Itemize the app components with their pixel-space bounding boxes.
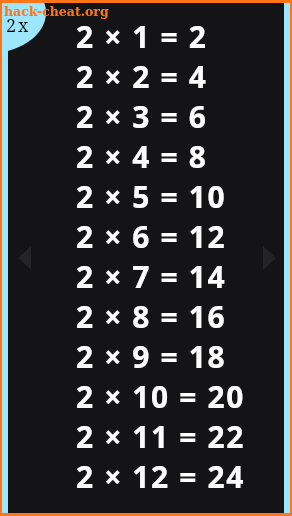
button[interactable]: 2 × 10 = 20 xyxy=(8,376,284,416)
staticText: 2 xyxy=(6,13,17,38)
button[interactable]: Previous table xyxy=(18,246,31,270)
button[interactable]: 2 × 7 = 14 xyxy=(8,256,284,296)
button[interactable]: 2 × 8 = 16 xyxy=(8,296,284,336)
staticText: 2 × 9 = 18 xyxy=(76,336,227,376)
staticText: 2 × 10 = 20 xyxy=(76,376,245,416)
staticText: x xyxy=(18,13,29,38)
button[interactable]: 2 × 9 = 18 xyxy=(8,336,284,376)
button[interactable]: 2 × 4 = 8 xyxy=(8,136,284,176)
staticText: 2 × 2 = 4 xyxy=(76,56,208,96)
button[interactable]: 2 × 1 = 2 xyxy=(8,16,284,56)
button[interactable]: 2 × 5 = 10 xyxy=(8,176,284,216)
staticText: 2 × 7 = 14 xyxy=(76,256,227,296)
button[interactable]: 2 × 2 = 4 xyxy=(8,56,284,96)
staticText: 2 × 12 = 24 xyxy=(76,456,245,496)
button[interactable]: 2 × 11 = 22 xyxy=(8,416,284,456)
staticText: 2 × 6 = 12 xyxy=(76,216,227,256)
staticText: 2 × 3 = 6 xyxy=(76,96,208,136)
button[interactable]: 2 × 6 = 12 xyxy=(8,216,284,256)
staticText: hack-cheat.org xyxy=(4,4,109,19)
button[interactable]: 2 × 12 = 24 xyxy=(8,456,284,496)
staticText: 2 × 4 = 8 xyxy=(76,136,208,176)
staticText: 2 × 11 = 22 xyxy=(76,416,245,456)
staticText: 2 × 8 = 16 xyxy=(76,296,227,336)
staticText: 2 × 5 = 10 xyxy=(76,176,227,216)
button[interactable]: Next table xyxy=(263,246,276,270)
staticText: 2 × 1 = 2 xyxy=(76,16,208,56)
button[interactable]: 2 × 3 = 6 xyxy=(8,96,284,136)
